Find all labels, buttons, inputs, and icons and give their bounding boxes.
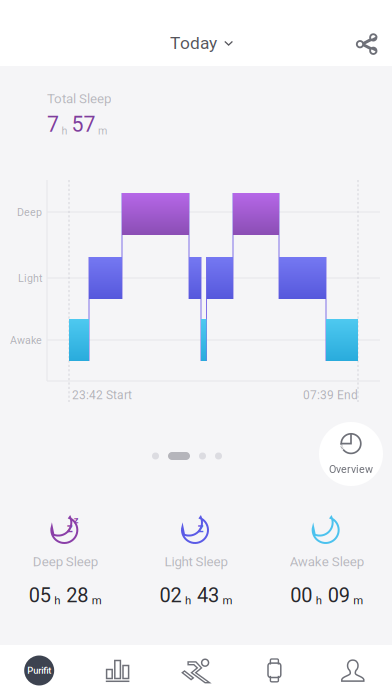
staticText: 09 (328, 584, 350, 607)
staticText: 7 (47, 112, 59, 137)
button[interactable]: Today (160, 26, 243, 60)
staticText: h (185, 594, 191, 607)
staticText: z (67, 521, 73, 535)
staticText: h (316, 594, 322, 607)
staticText: m (92, 594, 102, 607)
staticText: Today (170, 33, 217, 53)
button[interactable]: Profile (314, 657, 392, 683)
button[interactable]: Activity (157, 657, 235, 683)
staticText: m (353, 594, 363, 607)
staticText: Light (18, 272, 42, 284)
staticText: Awake Sleep (290, 554, 364, 570)
staticText: 43 (197, 584, 219, 607)
button[interactable]: Statistics (78, 657, 157, 683)
staticText: Overview (329, 463, 373, 475)
button[interactable]: Share (344, 21, 390, 67)
staticText: Total Sleep (47, 91, 111, 107)
staticText: h (61, 124, 67, 137)
staticText: m (222, 594, 232, 607)
staticText: Light Sleep (164, 554, 227, 570)
staticText: 28 (66, 584, 88, 607)
staticText: h (54, 594, 60, 607)
staticText: Deep Sleep (33, 554, 98, 570)
staticText: m (98, 124, 107, 137)
staticText: 02 (159, 584, 181, 607)
staticText: 05 (29, 584, 51, 607)
staticText: z (74, 514, 79, 525)
staticText: z (197, 521, 203, 535)
staticText: Deep (17, 206, 42, 218)
button[interactable]: Device (235, 657, 314, 683)
staticText: 57 (71, 112, 95, 137)
button[interactable]: Overview (319, 422, 383, 486)
staticText: 00 (290, 584, 312, 607)
staticText: Purifit (27, 665, 51, 676)
button[interactable]: Purifit Home (0, 655, 78, 685)
staticText: 07:39 End (303, 388, 358, 402)
staticText: 23:42 Start (72, 388, 132, 402)
staticText: Awake (10, 334, 42, 346)
